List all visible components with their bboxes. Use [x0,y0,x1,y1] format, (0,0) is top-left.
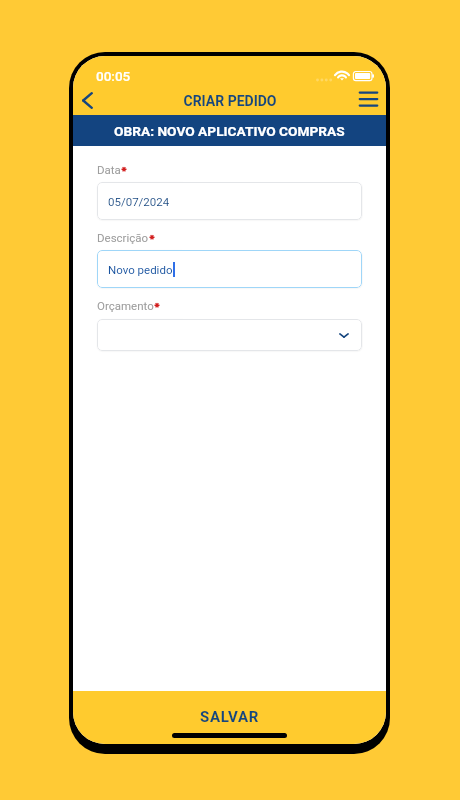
staticText: SALVAR [200,708,260,726]
staticText: Descrição [97,231,149,244]
button[interactable]: SALVAR [73,691,386,744]
staticText: Orçamento [97,299,154,312]
staticText: OBRA: NOVO APLICATIVO COMPRAS [114,123,345,139]
staticText: Novo pedido [108,263,173,276]
button[interactable]: Back [73,85,103,114]
staticText: 00:05 [96,68,131,84]
button[interactable]: Orçamento [97,319,362,351]
button[interactable]: Novo pedido [97,250,362,288]
button[interactable]: Menu [351,85,386,114]
staticText: 05/07/2024 [108,195,170,208]
button[interactable]: 05/07/2024 [97,182,362,220]
staticText: CRIAR PEDIDO [183,93,277,109]
staticText: Data [97,163,121,176]
